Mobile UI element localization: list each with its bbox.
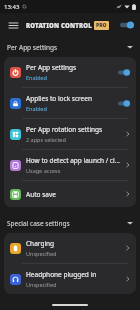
staticText: Charging <box>26 239 55 248</box>
button[interactable]: Applies to lock screen <box>4 88 136 118</box>
staticText: Enabled <box>26 74 47 81</box>
staticText: 2 apps selected <box>26 136 66 143</box>
button[interactable]: Per App settings <box>0 37 140 57</box>
button[interactable]: How to detect app launch / close <box>4 150 136 180</box>
button[interactable]: Charging <box>4 233 136 263</box>
staticText: Per App settings <box>7 43 58 52</box>
button[interactable]: Master toggle <box>116 18 134 32</box>
staticText: Auto save <box>26 190 56 199</box>
button[interactable]: Per App settings <box>4 57 136 87</box>
button[interactable]: Auto save <box>4 181 136 207</box>
staticText: Applies to lock screen <box>26 94 92 103</box>
staticText: Special case settings <box>7 219 70 228</box>
staticText: Headphone plugged in <box>26 270 97 279</box>
staticText: Per App settings <box>26 63 77 72</box>
button[interactable]: Menu <box>6 18 20 32</box>
staticText: PRO <box>96 22 107 29</box>
staticText: Usage access <box>26 167 61 174</box>
button[interactable]: Per App rotation settings <box>4 119 136 149</box>
staticText: 13:43 <box>4 3 20 11</box>
staticText: Unspecified <box>26 250 57 257</box>
button[interactable]: Headphone plugged in <box>4 264 136 294</box>
staticText: ROTATION CONTROL <box>26 22 92 30</box>
button[interactable]: Special case settings <box>0 213 140 233</box>
staticText: How to detect app launch / close <box>26 156 123 165</box>
staticText: Enabled <box>26 105 47 112</box>
staticText: Unspecified <box>26 281 57 288</box>
staticText: Per App rotation settings <box>26 125 103 134</box>
